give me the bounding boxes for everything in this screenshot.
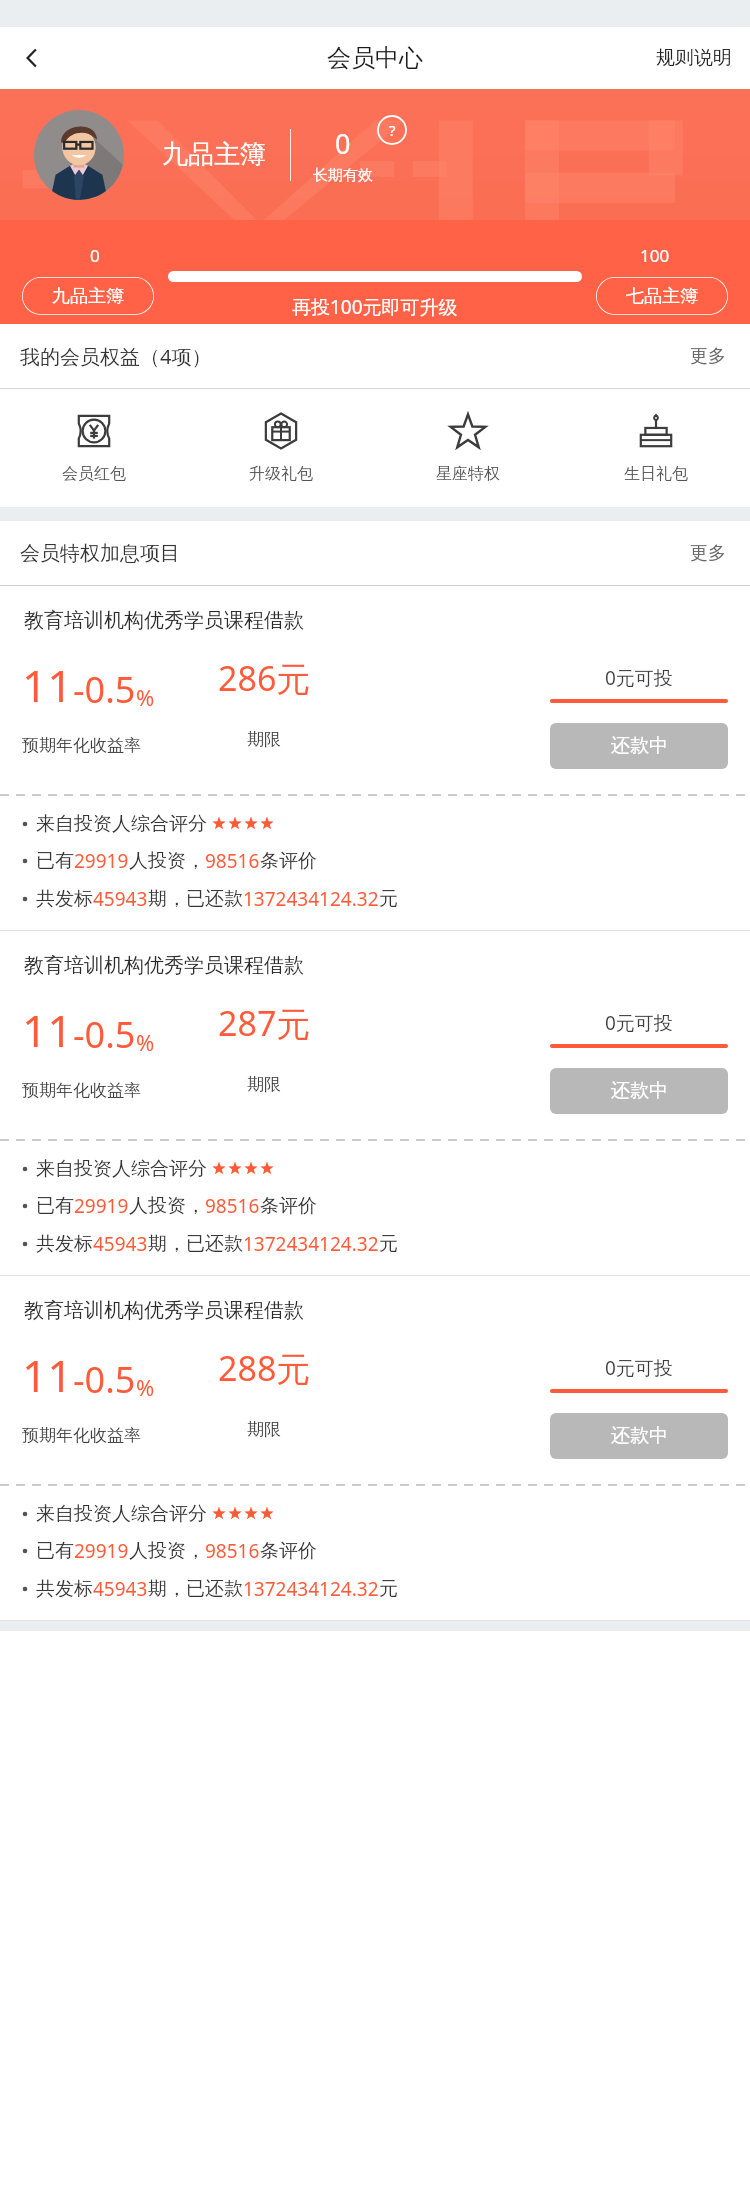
staticText: 期限	[247, 729, 281, 750]
staticText: 期，已还款	[148, 1577, 243, 1601]
button[interactable]: 九品主簿	[22, 277, 154, 315]
staticText: 教育培训机构优秀学员课程借款	[24, 608, 304, 633]
staticText: 升级礼包	[249, 464, 313, 484]
staticText: 已有	[36, 849, 74, 873]
staticText: 九品主簿	[52, 285, 124, 308]
staticText: 100	[640, 244, 670, 267]
staticText: 元	[379, 887, 398, 911]
staticText: 会员特权加息项目	[20, 541, 180, 566]
staticText: 星座特权	[436, 464, 500, 484]
staticText: 生日礼包	[624, 464, 688, 484]
staticText: 条评价	[260, 1194, 317, 1218]
staticText: 0元可投	[605, 665, 673, 691]
button[interactable]: 规则说明	[638, 36, 750, 80]
staticText: 来自投资人综合评分	[36, 812, 207, 836]
staticText: -0.5	[73, 665, 136, 714]
staticText: 共发标	[36, 887, 93, 911]
staticText: 期，已还款	[148, 887, 243, 911]
staticText: 规则说明	[656, 46, 732, 70]
staticText: 已有	[36, 1194, 74, 1218]
staticText: 教育培训机构优秀学员课程借款	[24, 1298, 304, 1323]
staticText: 45943	[93, 886, 148, 912]
staticText: 11	[22, 1345, 73, 1405]
staticText: 1372434124.32	[243, 1231, 379, 1257]
staticText: 期限	[247, 1074, 281, 1095]
staticText: 45943	[93, 1576, 148, 1602]
staticText: 288元	[218, 1345, 311, 1391]
staticText: 11	[22, 1000, 73, 1060]
staticText: 286元	[218, 655, 311, 701]
staticText: %	[136, 1027, 155, 1057]
staticText: -0.5	[73, 1355, 136, 1404]
staticText: -0.5	[73, 1010, 136, 1059]
staticText: 元	[379, 1232, 398, 1256]
staticText: 教育培训机构优秀学员课程借款	[24, 953, 304, 978]
button[interactable]: 还款中	[550, 1413, 728, 1459]
staticText: 再投100元即可升级	[292, 294, 458, 320]
staticText: 条评价	[260, 849, 317, 873]
staticText: 预期年化收益率	[22, 735, 141, 756]
staticText: 人投资，	[129, 1194, 205, 1218]
staticText: 七品主簿	[626, 285, 698, 308]
staticText: 0	[335, 125, 351, 162]
staticText: 98516	[205, 1193, 260, 1219]
button[interactable]: 会员红包	[0, 389, 187, 507]
staticText: 条评价	[260, 1539, 317, 1563]
staticText: 还款中	[611, 1079, 668, 1103]
button[interactable]: 更多	[686, 337, 730, 376]
button[interactable]: 还款中	[550, 1068, 728, 1114]
staticText: 预期年化收益率	[22, 1080, 141, 1101]
staticText: 会员红包	[62, 464, 126, 484]
staticText: 共发标	[36, 1232, 93, 1256]
staticText: 来自投资人综合评分	[36, 1502, 207, 1526]
staticText: 长期有效	[313, 166, 373, 185]
staticText: 0	[90, 244, 100, 267]
staticText: 29919	[74, 848, 129, 874]
staticText: 我的会员权益（4项）	[20, 343, 212, 370]
staticText: %	[136, 682, 155, 712]
staticText: 更多	[690, 345, 726, 368]
staticText: 人投资，	[129, 1539, 205, 1563]
staticText: 0元可投	[605, 1010, 673, 1036]
staticText: %	[136, 1372, 155, 1402]
staticText: 会员中心	[327, 43, 423, 73]
staticText: 期限	[247, 1419, 281, 1440]
staticText: 还款中	[611, 734, 668, 758]
staticText: 98516	[205, 848, 260, 874]
button[interactable]: Back	[8, 34, 56, 82]
staticText: 29919	[74, 1538, 129, 1564]
staticText: 共发标	[36, 1577, 93, 1601]
staticText: 45943	[93, 1231, 148, 1257]
staticText: 还款中	[611, 1424, 668, 1448]
button[interactable]: 还款中	[550, 723, 728, 769]
staticText: 期，已还款	[148, 1232, 243, 1256]
button[interactable]: 生日礼包	[562, 389, 750, 507]
staticText: 11	[22, 655, 73, 715]
staticText: 元	[379, 1577, 398, 1601]
staticText: ?	[389, 120, 396, 140]
staticText: 1372434124.32	[243, 886, 379, 912]
staticText: 九品主簿	[162, 138, 266, 171]
staticText: 来自投资人综合评分	[36, 1157, 207, 1181]
button[interactable]: 星座特权	[374, 389, 562, 507]
button[interactable]: 升级礼包	[187, 389, 374, 507]
staticText: 已有	[36, 1539, 74, 1563]
button[interactable]: 七品主簿	[596, 277, 728, 315]
button[interactable]: Help	[377, 115, 407, 145]
staticText: 1372434124.32	[243, 1576, 379, 1602]
staticText: 98516	[205, 1538, 260, 1564]
staticText: 更多	[690, 542, 726, 565]
staticText: 29919	[74, 1193, 129, 1219]
staticText: 287元	[218, 1000, 311, 1046]
staticText: 0元可投	[605, 1355, 673, 1381]
button[interactable]: 更多	[686, 534, 730, 573]
staticText: 人投资，	[129, 849, 205, 873]
staticText: 预期年化收益率	[22, 1425, 141, 1446]
